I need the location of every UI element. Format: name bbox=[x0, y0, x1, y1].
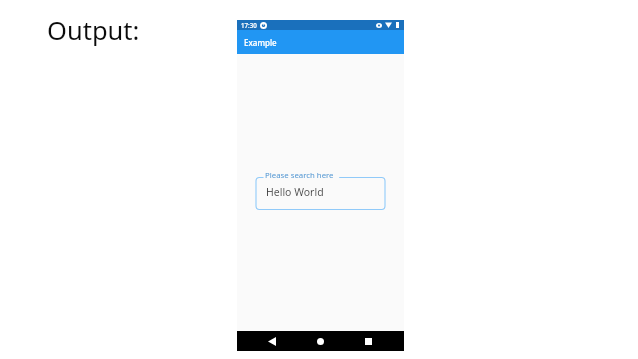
staticText: Example bbox=[244, 37, 277, 48]
button[interactable]: Recent apps bbox=[358, 331, 378, 351]
staticText: 17:30 bbox=[241, 21, 257, 29]
button[interactable]: Back bbox=[262, 331, 282, 351]
staticText: Please search here bbox=[265, 170, 334, 181]
button[interactable]: Please search here text field bbox=[256, 177, 385, 210]
staticText: Output: bbox=[47, 13, 140, 48]
button[interactable]: Home bbox=[310, 331, 330, 351]
staticText: Hello World bbox=[266, 185, 324, 199]
